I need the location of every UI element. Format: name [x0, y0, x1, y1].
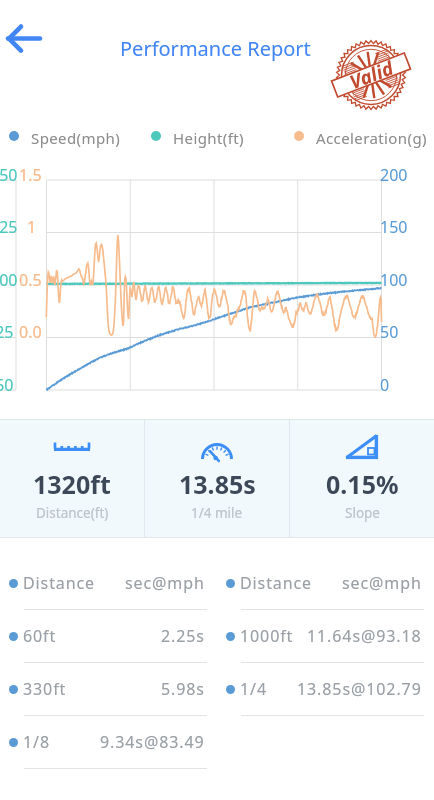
staticText: 0.5: [19, 269, 42, 291]
staticText: 1/8: [23, 731, 50, 753]
staticText: Slope: [345, 504, 380, 522]
staticText: 100: [380, 269, 408, 291]
button[interactable]: 1/4: [217, 663, 434, 716]
staticText: 11.64s@93.18: [307, 625, 422, 647]
staticText: Distance: [23, 572, 96, 594]
button[interactable]: 0.15%: [290, 419, 434, 538]
button[interactable]: 13.85s: [145, 419, 289, 538]
staticText: 100: [0, 269, 18, 291]
staticText: Performance Report: [120, 35, 311, 62]
staticText: 330ft: [23, 678, 67, 700]
staticText: 0: [380, 374, 390, 396]
staticText: 1: [27, 216, 37, 238]
staticText: Distance(ft): [36, 504, 109, 522]
staticText: Valid: [346, 55, 397, 95]
staticText: 1/4: [240, 678, 267, 700]
staticText: 0.15%: [326, 467, 399, 501]
staticText: 1/4 mile: [191, 504, 243, 522]
staticText: sec@mph: [125, 572, 205, 594]
button[interactable]: Back: [2, 13, 46, 57]
button[interactable]: 1000ft: [217, 610, 434, 663]
staticText: -50: [0, 374, 14, 396]
staticText: 0.0: [19, 321, 42, 343]
button[interactable]: 1/8: [0, 716, 217, 769]
staticText: 50: [380, 321, 399, 343]
staticText: 13.85s: [179, 467, 256, 501]
staticText: Speed(mph): [31, 128, 121, 148]
button[interactable]: 60ft: [0, 610, 217, 663]
button[interactable]: Distance: [0, 557, 217, 610]
staticText: 125: [0, 216, 18, 238]
staticText: Acceleration(g): [316, 128, 427, 148]
staticText: 1.5: [19, 164, 42, 186]
staticText: Distance: [240, 572, 313, 594]
staticText: Height(ft): [173, 128, 244, 148]
staticText: 5.98s: [161, 678, 205, 700]
staticText: 1320ft: [33, 467, 111, 501]
staticText: -25: [0, 321, 14, 343]
staticText: 150: [380, 216, 408, 238]
button[interactable]: Distance: [217, 557, 434, 610]
staticText: 60ft: [23, 625, 57, 647]
staticText: 150: [0, 164, 18, 186]
staticText: 200: [380, 164, 408, 186]
button[interactable]: 1320ft: [0, 419, 144, 538]
staticText: 13.85s@102.79: [297, 678, 422, 700]
staticText: 1000ft: [240, 625, 294, 647]
staticText: sec@mph: [342, 572, 422, 594]
staticText: 9.34s@83.49: [100, 731, 205, 753]
button[interactable]: 330ft: [0, 663, 217, 716]
staticText: 2.25s: [161, 625, 205, 647]
